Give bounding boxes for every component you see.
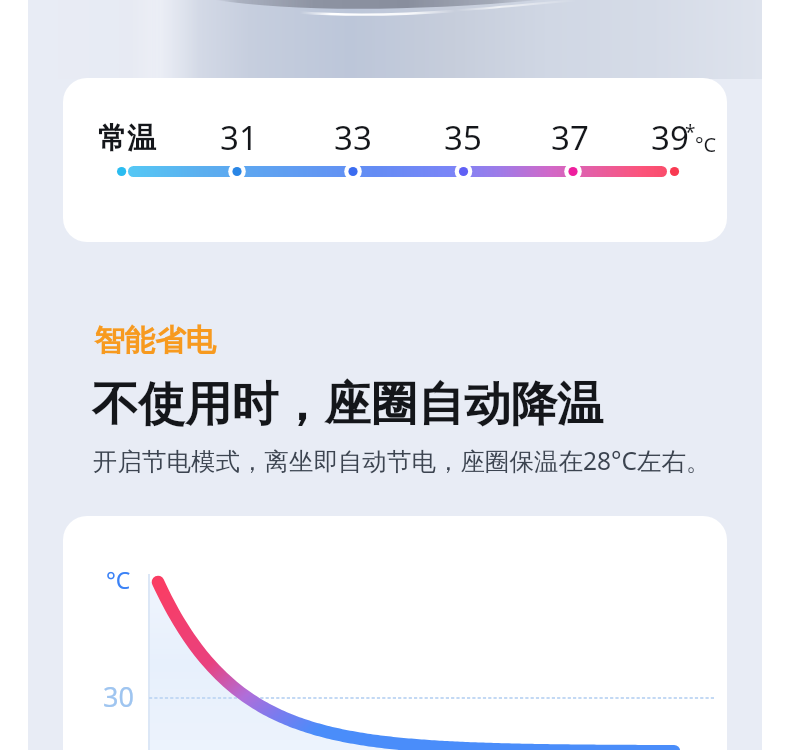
staticText: 常温 <box>98 120 156 157</box>
staticText: * <box>685 119 696 145</box>
staticText: 35 <box>444 115 482 160</box>
staticText: °C <box>106 564 131 595</box>
staticText: 智能省电 <box>94 322 216 360</box>
staticText: 37 <box>551 115 589 160</box>
staticText: 33 <box>334 115 372 160</box>
staticText: 开启节电模式，离坐即自动节电，座圈保温在28°C左右。 <box>93 444 711 477</box>
staticText: 30 <box>103 678 134 715</box>
staticText: 31 <box>220 115 258 160</box>
staticText: 39 <box>651 115 689 160</box>
staticText: °C <box>695 131 717 158</box>
button[interactable]: °C <box>63 516 727 750</box>
button[interactable]: 常温 <box>63 78 727 242</box>
staticText: 不使用时，座圈自动降温 <box>92 375 604 434</box>
